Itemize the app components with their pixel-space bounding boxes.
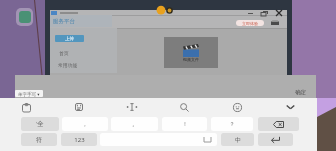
staticText: 常用功能 (58, 62, 78, 68)
button[interactable]: Notes (52, 98, 105, 116)
staticText: 123 (74, 136, 85, 144)
staticText: 视频文件 (183, 57, 199, 62)
staticText: 首页 (59, 50, 69, 56)
staticText: 服务平台 (53, 18, 75, 25)
button[interactable]: Search (158, 98, 211, 116)
button[interactable]: 立即体验 (236, 20, 264, 26)
staticText: 单字手写 ▾ (18, 91, 40, 97)
button[interactable]: Close (273, 10, 285, 16)
button[interactable]: 上传 (55, 35, 84, 42)
button[interactable]: Space (100, 133, 217, 146)
button[interactable]: App icon (16, 8, 33, 26)
button[interactable]: Customer service (270, 19, 279, 26)
button[interactable]: 单字手写 ▾ (15, 90, 43, 97)
button[interactable]: Emoji (211, 98, 264, 116)
button[interactable]: Hide keyboard (264, 98, 317, 116)
button[interactable]: ！ (162, 117, 207, 131)
staticText: 。 (132, 121, 138, 128)
staticText: 中 (235, 136, 241, 144)
staticText: 立即体验 (242, 21, 258, 26)
button[interactable]: 中 (221, 133, 254, 146)
button[interactable]: Key (258, 133, 293, 146)
button[interactable]: 123 (61, 133, 97, 146)
staticText: ？ (229, 121, 235, 128)
button[interactable]: Key (258, 117, 299, 131)
button[interactable]: Clipboard (0, 98, 52, 116)
staticText: ʼ (36, 121, 37, 128)
staticText: 全 (37, 120, 44, 128)
staticText: 符 (36, 136, 42, 144)
button[interactable]: 确定 (287, 87, 313, 97)
staticText: ， (82, 121, 88, 128)
button[interactable]: Minimize (244, 10, 256, 16)
button[interactable]: Shift (21, 117, 59, 131)
staticText: 确定 (295, 89, 306, 96)
staticText: ！ (182, 121, 188, 128)
button[interactable]: Maximize (258, 10, 270, 16)
button[interactable]: 符 (21, 133, 57, 146)
staticText: 上传 (65, 36, 74, 42)
button[interactable]: Move cursor (105, 98, 158, 116)
button[interactable]: ？ (211, 117, 253, 131)
button[interactable]: 视频文件 (164, 37, 218, 68)
